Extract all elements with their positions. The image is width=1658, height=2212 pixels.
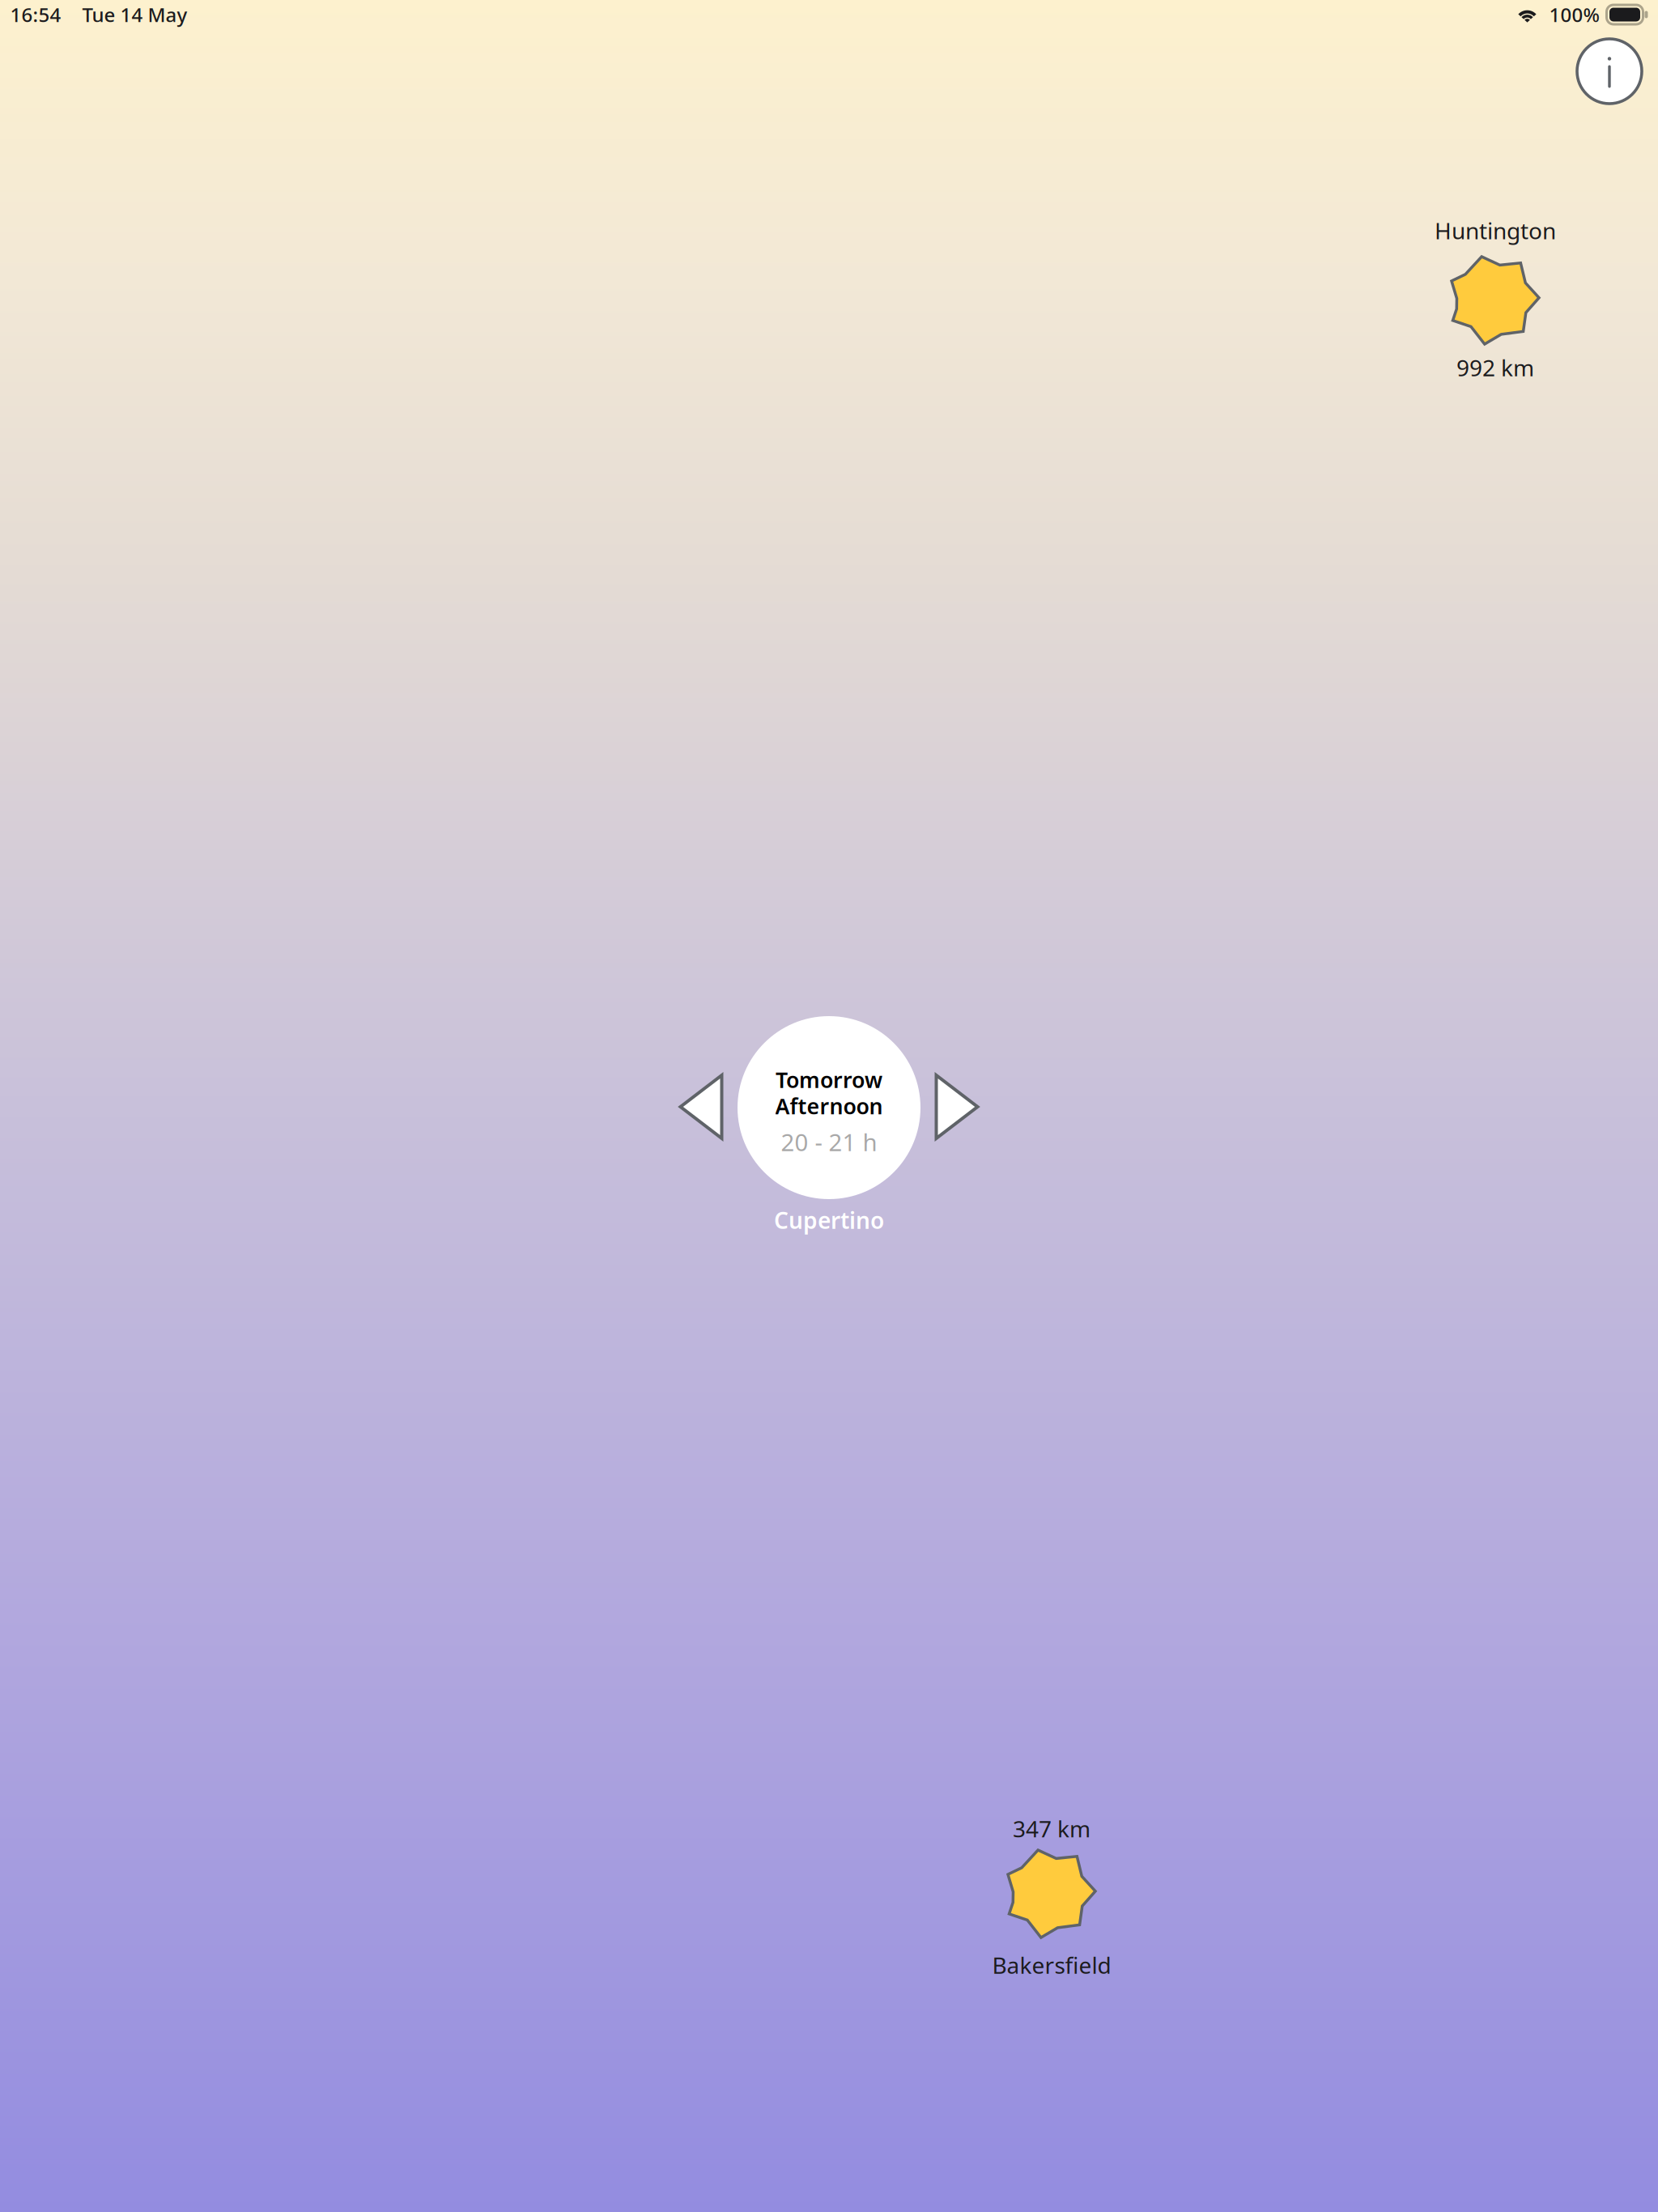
staticText: Cupertino [774,1205,884,1235]
button[interactable]: Tomorrow [738,1016,920,1199]
staticText: 16:54 [10,2,61,28]
button[interactable]: Next [936,1075,978,1138]
staticText: 347 km [1013,1814,1090,1844]
button[interactable]: Huntington [1374,207,1617,393]
staticText: Tomorrow [776,1065,882,1094]
staticText: 20 - 21 h [781,1126,877,1158]
button[interactable]: Previous [680,1075,722,1138]
staticText: 100% [1549,2,1599,28]
staticText: Bakersfield [992,1950,1111,1980]
staticText: Tue 14 May [82,2,187,28]
button[interactable]: Info [1577,39,1642,104]
staticText: Huntington [1435,215,1556,245]
staticText: Afternoon [775,1092,883,1120]
staticText: 992 km [1456,352,1534,382]
button[interactable]: 347 km [930,1801,1173,1987]
